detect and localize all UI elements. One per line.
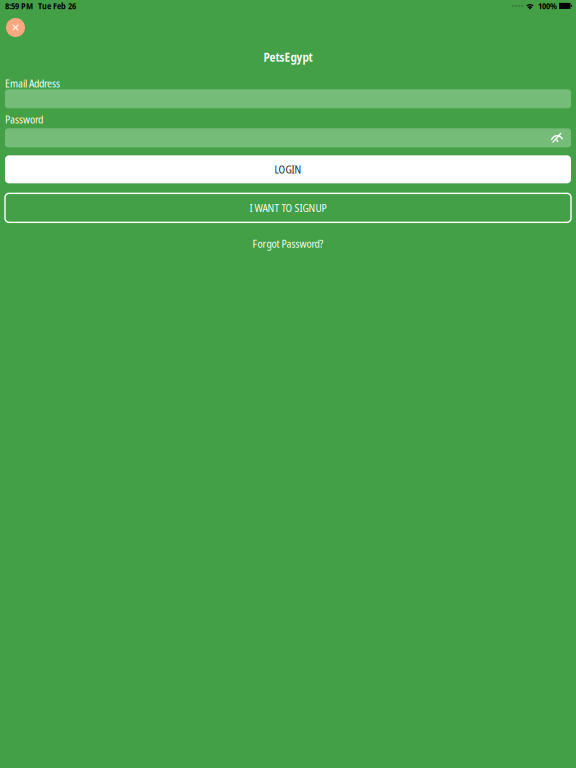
staticText: Tue Feb 26 [38, 0, 76, 12]
staticText: 8:59 PM [5, 0, 33, 12]
staticText: I WANT TO SIGNUP [249, 201, 326, 215]
staticText: LOGIN [274, 162, 301, 177]
staticText: Forgot Password? [252, 236, 323, 251]
button[interactable]: Forgot Password? [252, 236, 323, 251]
button[interactable]: Close [6, 18, 25, 37]
button[interactable]: Show password [551, 129, 571, 146]
staticText: PetsEgypt [263, 49, 312, 65]
staticText: Password [5, 112, 43, 127]
button[interactable]: I WANT TO SIGNUP [5, 193, 571, 222]
button[interactable]: LOGIN [5, 155, 571, 183]
staticText: Email Address [5, 76, 60, 91]
staticText: 100% [538, 0, 557, 12]
